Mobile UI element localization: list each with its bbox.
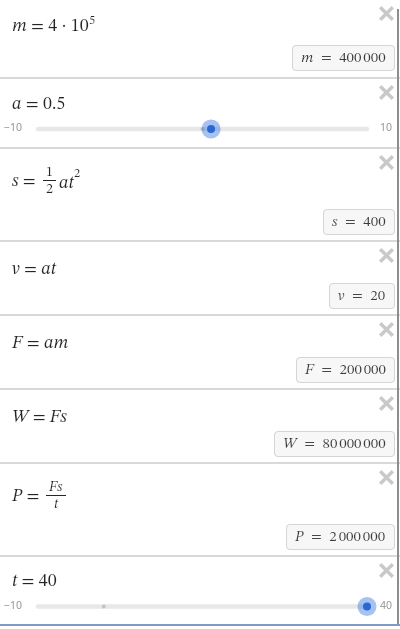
staticText: t = 40 <box>12 572 57 590</box>
staticText: Fs <box>49 480 63 494</box>
button[interactable]: t = 40 <box>0 557 400 624</box>
staticText: 40 <box>380 598 393 612</box>
staticText: P = <box>12 487 44 505</box>
staticText: s = 400 <box>332 215 386 230</box>
staticText: s = <box>12 172 41 190</box>
button[interactable] <box>379 563 394 578</box>
staticText: at <box>59 174 74 192</box>
button[interactable]: v = 20 <box>338 283 386 309</box>
staticText: W = 80 000 000 <box>283 437 386 452</box>
staticText: P = 2 000 000 <box>295 530 386 545</box>
button[interactable] <box>379 248 394 263</box>
button[interactable]: F = 200 000 <box>305 357 386 383</box>
staticText: m = 400 000 <box>301 51 386 66</box>
staticText: a = 0.5 <box>12 95 66 113</box>
button[interactable] <box>379 322 394 337</box>
button[interactable] <box>379 6 394 21</box>
staticText: v = 20 <box>338 289 386 304</box>
staticText: m = 4 · 10 <box>12 17 89 35</box>
button[interactable]: v = at <box>0 242 400 316</box>
staticText: F = 200 000 <box>305 363 386 378</box>
staticText: F = am <box>12 334 69 352</box>
button[interactable]: F = am <box>0 316 400 390</box>
staticText: 5 <box>89 14 96 27</box>
button[interactable] <box>379 470 394 485</box>
button[interactable]: s = <box>0 149 400 242</box>
staticText: −10 <box>4 120 23 134</box>
button[interactable]: P = <box>0 464 400 557</box>
staticText: 10 <box>380 120 393 134</box>
button[interactable] <box>379 155 394 170</box>
button[interactable]: a = 0.5 <box>0 79 400 149</box>
staticText: t <box>54 497 59 511</box>
staticText: 2 <box>46 182 53 196</box>
staticText: W = Fs <box>12 408 67 426</box>
staticText: 2 <box>74 167 81 180</box>
button[interactable]: W = 80 000 000 <box>283 431 386 457</box>
staticText: −10 <box>4 598 23 612</box>
button[interactable]: P = 2 000 000 <box>295 524 386 550</box>
button[interactable]: m = 4 · 10 <box>0 0 400 79</box>
button[interactable] <box>379 396 394 411</box>
button[interactable] <box>379 85 394 100</box>
staticText: v = at <box>12 260 57 278</box>
button[interactable]: m = 400 000 <box>301 45 386 71</box>
staticText: 1 <box>46 165 53 179</box>
button[interactable]: W = Fs <box>0 390 400 464</box>
button[interactable]: s = 400 <box>332 209 386 235</box>
